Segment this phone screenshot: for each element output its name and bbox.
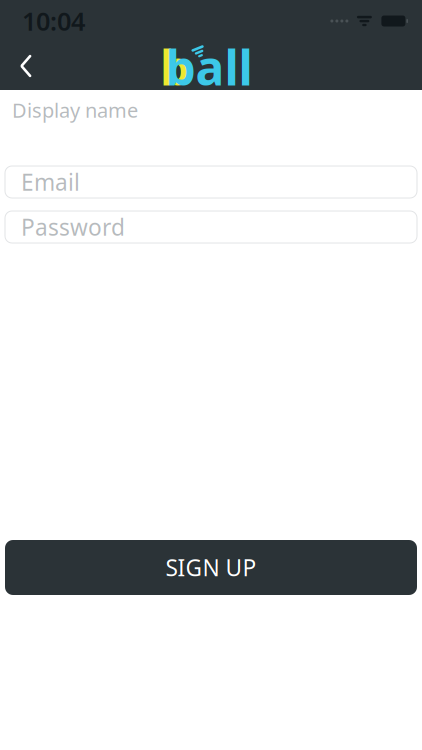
staticText: Password [21,212,125,242]
staticText: Email [21,167,80,197]
button[interactable]: Email [5,166,417,198]
staticText: ball [165,35,252,99]
button[interactable]: SIGN UP [5,540,417,595]
staticText: b [160,35,190,99]
staticText: 10:04 [22,4,85,38]
button[interactable]: Back [0,42,52,90]
button[interactable]: Display name [4,92,418,128]
staticText: Display name [12,97,138,123]
button[interactable]: Password [5,211,417,243]
staticText: SIGN UP [165,552,256,582]
